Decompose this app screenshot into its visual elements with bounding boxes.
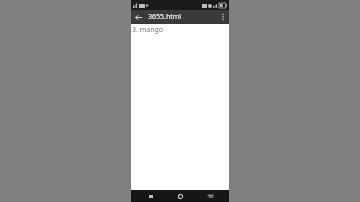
button[interactable]: Navigate up (131, 10, 145, 24)
button[interactable]: Recent apps (200, 190, 220, 202)
button[interactable]: More options (217, 10, 229, 24)
staticText: 3. mango (132, 25, 164, 35)
button[interactable]: Home (170, 190, 190, 202)
staticText: 3655.html (148, 12, 217, 22)
button[interactable]: Back (141, 190, 161, 202)
